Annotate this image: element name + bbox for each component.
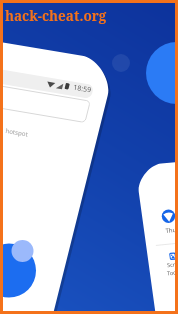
button[interactable]: App screenshot preview — [0, 0, 178, 314]
